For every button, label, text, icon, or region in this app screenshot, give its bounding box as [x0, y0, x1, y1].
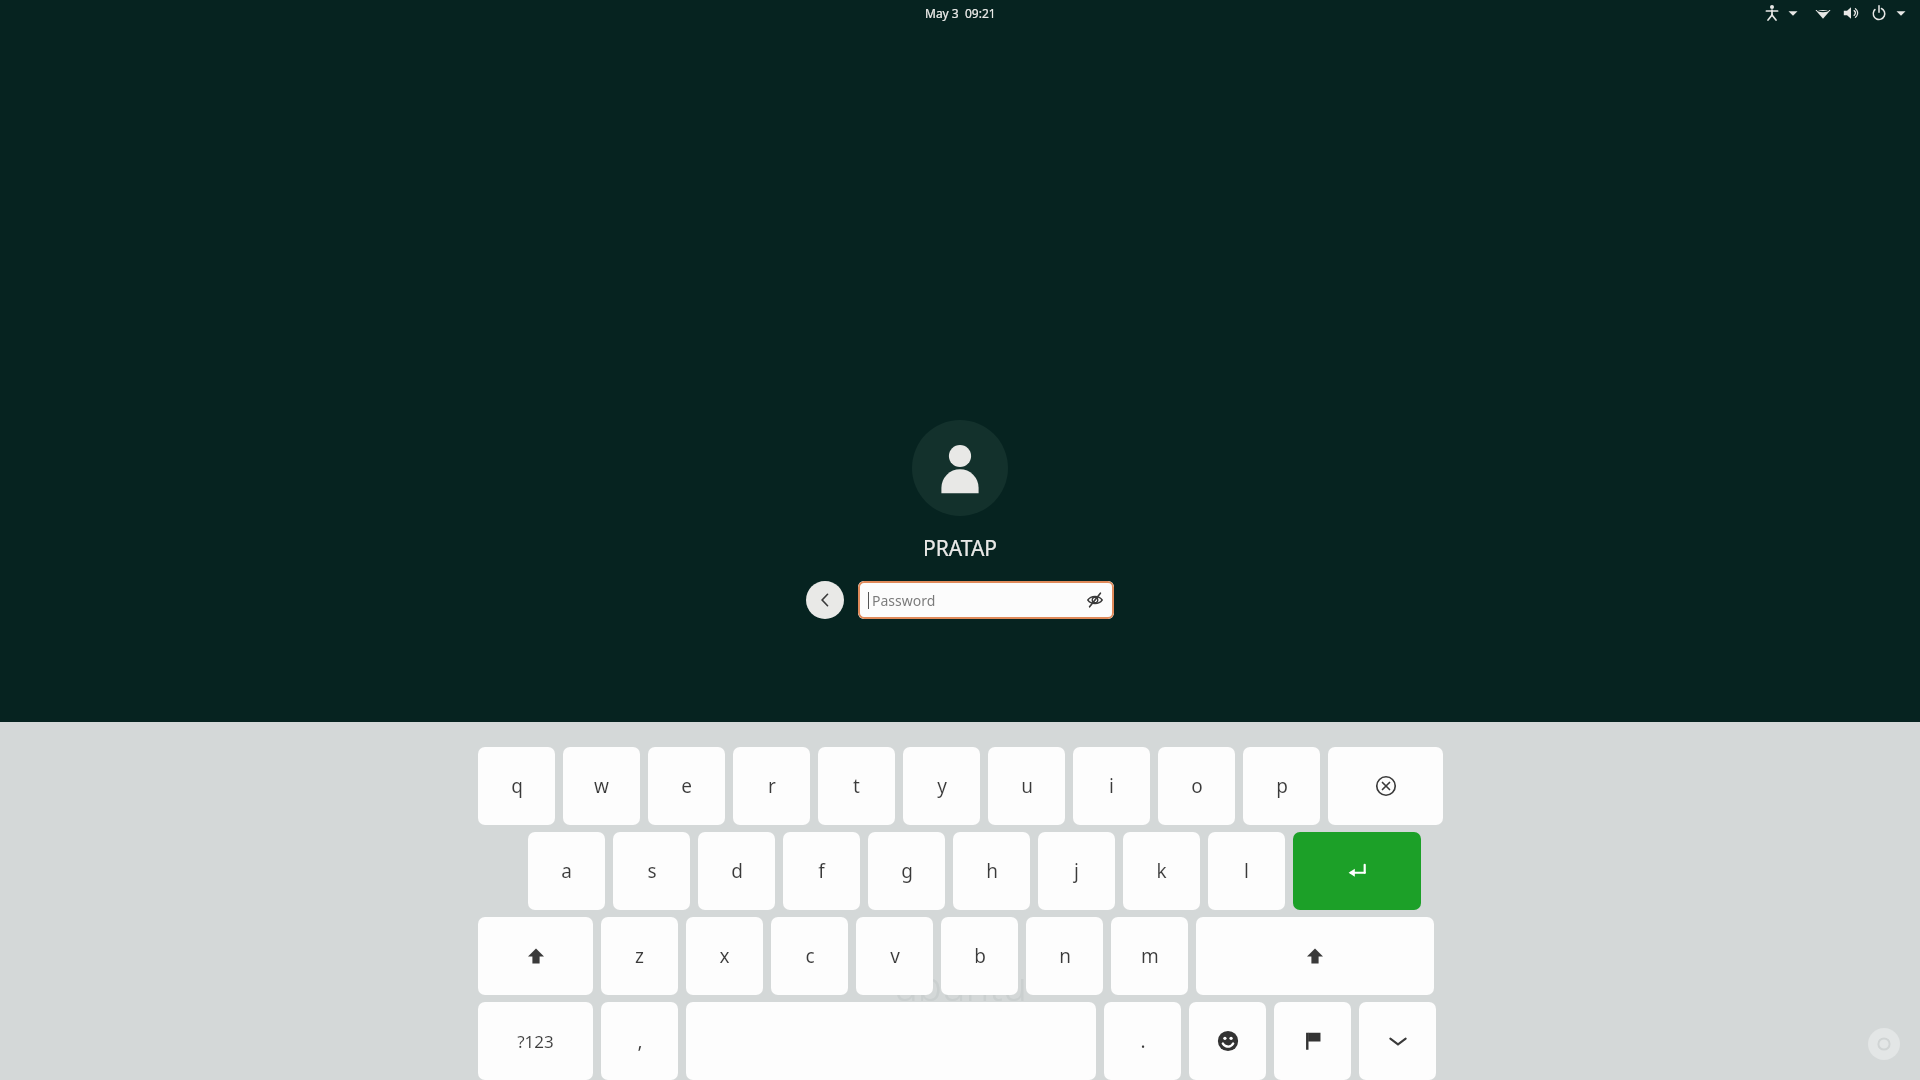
staticText: b	[974, 943, 986, 969]
button[interactable]: b	[941, 917, 1018, 995]
button[interactable]: User avatar	[912, 420, 1008, 516]
button[interactable]: k	[1123, 832, 1200, 910]
button[interactable]: z	[601, 917, 678, 995]
staticText: l	[1244, 858, 1249, 884]
staticText: ubuntu	[894, 958, 1027, 1012]
staticText: c	[805, 943, 815, 969]
button[interactable]: n	[1026, 917, 1103, 995]
button[interactable]: Accessibility	[1762, 3, 1782, 23]
staticText: j	[1074, 858, 1079, 884]
staticText: d	[731, 858, 743, 884]
button[interactable]: o	[1158, 747, 1235, 825]
button[interactable]: v	[856, 917, 933, 995]
button[interactable]: Password	[868, 581, 1104, 619]
button[interactable]: Wi-Fi	[1814, 4, 1832, 22]
staticText: f	[818, 858, 825, 884]
button[interactable]: Back	[806, 581, 844, 619]
staticText: r	[768, 773, 776, 799]
button[interactable]: l	[1208, 832, 1285, 910]
button[interactable]: u	[988, 747, 1065, 825]
button[interactable]: p	[1243, 747, 1320, 825]
button[interactable]: FLAG	[1274, 1002, 1351, 1080]
button[interactable]: j	[1038, 832, 1115, 910]
staticText: h	[986, 858, 998, 884]
staticText: Password	[872, 591, 1086, 610]
staticText: y	[937, 773, 947, 799]
staticText: i	[1109, 773, 1114, 799]
button[interactable]: Show password	[1086, 591, 1104, 609]
button[interactable]: f	[783, 832, 860, 910]
button[interactable]: SHIFT	[1196, 917, 1434, 995]
button[interactable]: ENTER	[1293, 832, 1421, 910]
button[interactable]: w	[563, 747, 640, 825]
staticText: s	[647, 858, 657, 884]
staticText: e	[681, 773, 692, 799]
button[interactable]: Keyboard settings	[1868, 1028, 1900, 1060]
button[interactable]: e	[648, 747, 725, 825]
staticText: q	[511, 773, 523, 799]
button[interactable]: .	[1104, 1002, 1181, 1080]
button[interactable]: d	[698, 832, 775, 910]
button[interactable]: Volume	[1842, 4, 1860, 22]
staticText: n	[1059, 943, 1071, 969]
staticText: o	[1191, 773, 1203, 799]
staticText: ,	[637, 1028, 643, 1054]
staticText: .	[1140, 1028, 1146, 1054]
button[interactable]: Power	[1870, 4, 1888, 22]
button[interactable]: ,	[601, 1002, 678, 1080]
button[interactable]: h	[953, 832, 1030, 910]
staticText: u	[1021, 773, 1033, 799]
button[interactable]: y	[903, 747, 980, 825]
staticText: a	[561, 858, 572, 884]
staticText: z	[635, 943, 644, 969]
button[interactable]: s	[613, 832, 690, 910]
staticText: g	[901, 858, 913, 884]
staticText: m	[1141, 943, 1159, 969]
button[interactable]: CHEVRON	[1359, 1002, 1436, 1080]
staticText: k	[1156, 858, 1167, 884]
button[interactable]: x	[686, 917, 763, 995]
button[interactable]: q	[478, 747, 555, 825]
button[interactable]: SMILEY	[1189, 1002, 1266, 1080]
button[interactable]: ?123	[478, 1002, 593, 1080]
staticText: w	[594, 773, 609, 799]
button[interactable]: g	[868, 832, 945, 910]
button[interactable]: SHIFT	[478, 917, 593, 995]
staticText: PRATAP	[923, 534, 998, 563]
staticText: p	[1276, 773, 1288, 799]
staticText: x	[719, 943, 730, 969]
staticText: t	[853, 773, 860, 799]
staticText: May 3 09:21	[925, 5, 996, 21]
button[interactable]: i	[1073, 747, 1150, 825]
staticText: v	[890, 943, 900, 969]
button[interactable]: m	[1111, 917, 1188, 995]
button[interactable]: BACKSPACE	[1328, 747, 1443, 825]
button[interactable]: r	[733, 747, 810, 825]
staticText: ?123	[517, 1030, 554, 1053]
button[interactable]: a	[528, 832, 605, 910]
button[interactable]: c	[771, 917, 848, 995]
button[interactable]: t	[818, 747, 895, 825]
